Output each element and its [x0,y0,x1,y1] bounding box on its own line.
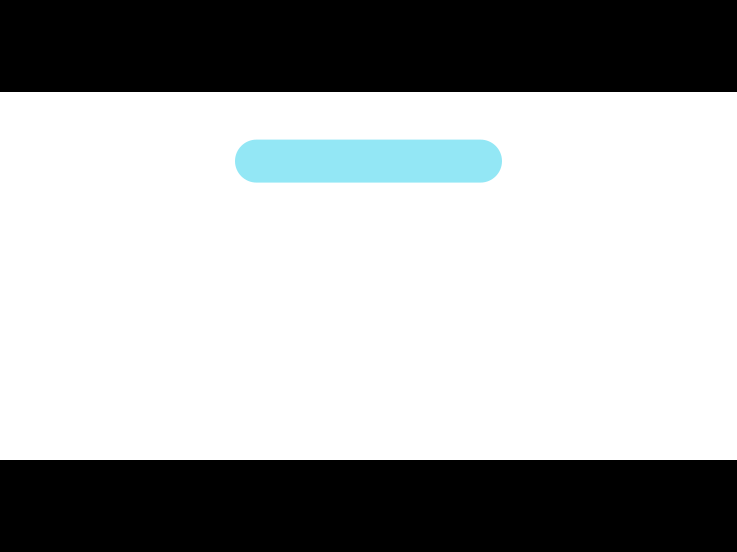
button[interactable]: Continue [235,140,502,183]
